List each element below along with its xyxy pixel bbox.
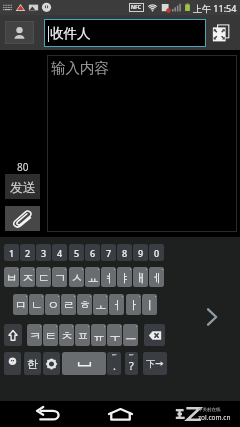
- button[interactable]: ㅅ: [69, 267, 84, 287]
- button[interactable]: ㅣ: [142, 294, 157, 315]
- staticText: 한: [27, 357, 38, 371]
- button[interactable]: Symbols: [4, 352, 21, 375]
- button[interactable]: Expand keyboard: [190, 292, 234, 342]
- button[interactable]: ㅛ: [85, 267, 100, 287]
- button[interactable]: 收件人: [44, 19, 206, 47]
- staticText: 80: [17, 160, 29, 174]
- staticText: 9: [138, 247, 144, 259]
- button[interactable]: ㄹ: [61, 294, 76, 315]
- staticText: ㅛ: [87, 270, 99, 285]
- button[interactable]: 输入内容: [47, 55, 237, 232]
- staticText: 上午 11:54: [193, 2, 237, 14]
- button[interactable]: ㅜ: [107, 324, 122, 346]
- staticText: ㅔ: [151, 270, 163, 285]
- staticText: 6: [90, 247, 96, 259]
- button[interactable]: Home: [102, 401, 138, 427]
- button[interactable]: 8: [117, 244, 132, 261]
- staticText: .: [113, 358, 116, 373]
- staticText: ㅋ: [29, 328, 41, 343]
- button[interactable]: ㅡ: [123, 324, 138, 346]
- button[interactable]: ㅓ: [109, 294, 124, 315]
- staticText: ㅎ: [79, 297, 91, 312]
- staticText: ㅁ: [15, 297, 27, 312]
- staticText: ㅠ: [93, 328, 105, 343]
- button[interactable]: ㅎ: [77, 294, 92, 315]
- staticText: ㅜ: [109, 328, 121, 343]
- staticText: 5: [74, 247, 80, 259]
- button[interactable]: ㅍ: [75, 324, 90, 346]
- button[interactable]: ㅇ: [45, 294, 60, 315]
- staticText: ㅅ: [71, 270, 83, 285]
- staticText: 输入内容: [51, 59, 109, 77]
- button[interactable]: ㅋ: [27, 324, 42, 346]
- staticText: ?: [129, 358, 134, 373]
- staticText: 2: [25, 247, 31, 259]
- button[interactable]: ㄴ: [29, 294, 44, 315]
- button[interactable]: 한: [24, 352, 41, 375]
- staticText: 8: [122, 247, 128, 259]
- button[interactable]: 7: [101, 244, 116, 261]
- button[interactable]: ㄱ: [52, 267, 67, 287]
- button[interactable]: 5: [69, 244, 84, 261]
- button[interactable]: Enter: [143, 352, 167, 375]
- button[interactable]: 发送: [5, 174, 40, 199]
- button[interactable]: Pick contact: [5, 21, 34, 44]
- button[interactable]: 3: [36, 244, 51, 261]
- button[interactable]: ㅁ: [13, 294, 28, 315]
- staticText: ㄱ: [54, 270, 66, 285]
- staticText: ㅐ: [135, 270, 147, 285]
- staticText: ㅕ: [103, 270, 115, 285]
- staticText: ㅌ: [45, 328, 57, 343]
- staticText: 发送: [10, 179, 36, 195]
- button[interactable]: ㅊ: [59, 324, 74, 346]
- staticText: ㅍ: [77, 328, 89, 343]
- button[interactable]: Contacts: [206, 19, 236, 47]
- button[interactable]: “”: [125, 352, 138, 375]
- button[interactable]: ㅗ: [93, 294, 108, 315]
- staticText: ㄷ: [38, 270, 50, 285]
- button[interactable]: 4: [52, 244, 67, 261]
- staticText: “”: [129, 352, 134, 360]
- staticText: ㅡ: [125, 328, 137, 343]
- staticText: ㅓ: [111, 297, 123, 312]
- button[interactable]: Attach: [5, 206, 40, 231]
- staticText: ㅈ: [22, 270, 34, 285]
- staticText: 3: [41, 247, 47, 259]
- staticText: ㅂ: [6, 270, 18, 285]
- button[interactable]: ㅑ: [117, 267, 132, 287]
- staticText: 0: [154, 247, 160, 259]
- staticText: 收件人: [50, 25, 91, 42]
- staticText: ㅗ: [95, 297, 107, 312]
- button[interactable]: ㅐ: [133, 267, 148, 287]
- staticText: 中关村在线: [198, 407, 221, 413]
- staticText: 4: [57, 247, 63, 259]
- button[interactable]: “”: [107, 352, 121, 375]
- button[interactable]: Space: [62, 352, 106, 375]
- button[interactable]: Shift: [4, 324, 22, 346]
- staticText: NFC: [131, 4, 142, 11]
- button[interactable]: Keyboard settings: [43, 352, 60, 375]
- button[interactable]: ㅏ: [126, 294, 141, 315]
- staticText: zol.com.cn: [198, 413, 231, 422]
- button[interactable]: ㅕ: [101, 267, 116, 287]
- button[interactable]: Backspace: [144, 324, 165, 346]
- staticText: 7: [106, 247, 112, 259]
- button[interactable]: 9: [133, 244, 148, 261]
- button[interactable]: ㅈ: [20, 267, 35, 287]
- button[interactable]: 0: [149, 244, 164, 261]
- staticText: 1: [9, 247, 15, 259]
- staticText: “”: [112, 352, 117, 360]
- button[interactable]: ㅔ: [149, 267, 164, 287]
- button[interactable]: ㅂ: [4, 267, 19, 287]
- button[interactable]: ㅌ: [43, 324, 58, 346]
- button[interactable]: 2: [20, 244, 35, 261]
- button[interactable]: Back: [30, 401, 66, 427]
- button[interactable]: ㅠ: [91, 324, 106, 346]
- staticText: ㄴ: [31, 297, 43, 312]
- button[interactable]: 6: [85, 244, 100, 261]
- staticText: ㄹ: [63, 297, 75, 312]
- button[interactable]: 1: [4, 244, 19, 261]
- button[interactable]: ㄷ: [36, 267, 51, 287]
- staticText: 下: [146, 358, 155, 369]
- staticText: ㅑ: [119, 270, 131, 285]
